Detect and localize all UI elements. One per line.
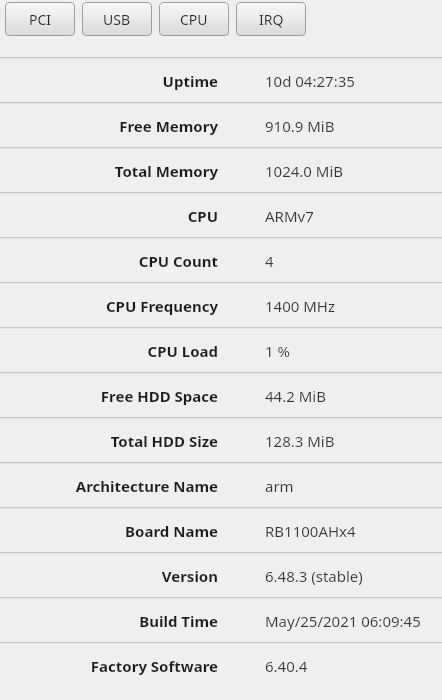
button[interactable]: Build Time [0,599,442,642]
staticText: Factory Software [90,656,218,676]
staticText: Total HDD Size [110,431,218,451]
button[interactable]: CPU [159,2,229,36]
staticText: Total Memory [114,161,218,181]
button[interactable]: Free Memory [0,104,442,147]
button[interactable]: PCI [5,2,75,36]
staticText: Architecture Name [75,476,218,496]
button[interactable]: Version [0,554,442,597]
button[interactable]: IRQ [236,2,306,36]
staticText: Free Memory [119,116,218,136]
staticText: Version [161,566,218,586]
button[interactable]: CPU Count [0,239,442,282]
staticText: 6.40.4 [265,656,308,676]
staticText: 1 % [265,341,290,361]
staticText: USB [103,10,131,29]
button[interactable]: Factory Software [0,644,442,687]
staticText: 1024.0 MiB [265,161,344,181]
staticText: 128.3 MiB [265,431,335,451]
staticText: CPU Count [138,251,218,271]
staticText: Build Time [139,611,218,631]
button[interactable]: USB [82,2,152,36]
staticText: 44.2 MiB [265,386,326,406]
staticText: arm [265,476,294,496]
staticText: Board Name [125,521,218,541]
staticText: 10d 04:27:35 [265,71,355,91]
staticText: CPU [187,206,218,226]
staticText: 910.9 MiB [265,116,335,136]
staticText: 6.48.3 (stable) [265,566,363,586]
staticText: Uptime [162,71,218,91]
button[interactable]: CPU Load [0,329,442,372]
button[interactable]: Architecture Name [0,464,442,507]
staticText: CPU Frequency [105,296,218,316]
button[interactable]: Free HDD Space [0,374,442,417]
button[interactable]: Total Memory [0,149,442,192]
button[interactable]: Uptime [0,59,442,102]
staticText: Free HDD Space [100,386,218,406]
staticText: 4 [265,251,274,271]
staticText: May/25/2021 06:09:45 [265,611,421,631]
staticText: IRQ [259,10,284,29]
button[interactable]: CPU [0,194,442,237]
button[interactable]: Board Name [0,509,442,552]
staticText: CPU [180,10,208,29]
staticText: RB1100AHx4 [265,521,356,541]
staticText: PCI [29,10,52,29]
button[interactable]: CPU Frequency [0,284,442,327]
staticText: 1400 MHz [265,296,335,316]
button[interactable]: Total HDD Size [0,419,442,462]
staticText: CPU Load [147,341,218,361]
staticText: ARMv7 [265,206,314,226]
